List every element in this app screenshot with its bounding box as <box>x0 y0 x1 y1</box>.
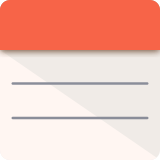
button[interactable]: Open card <box>0 0 160 160</box>
